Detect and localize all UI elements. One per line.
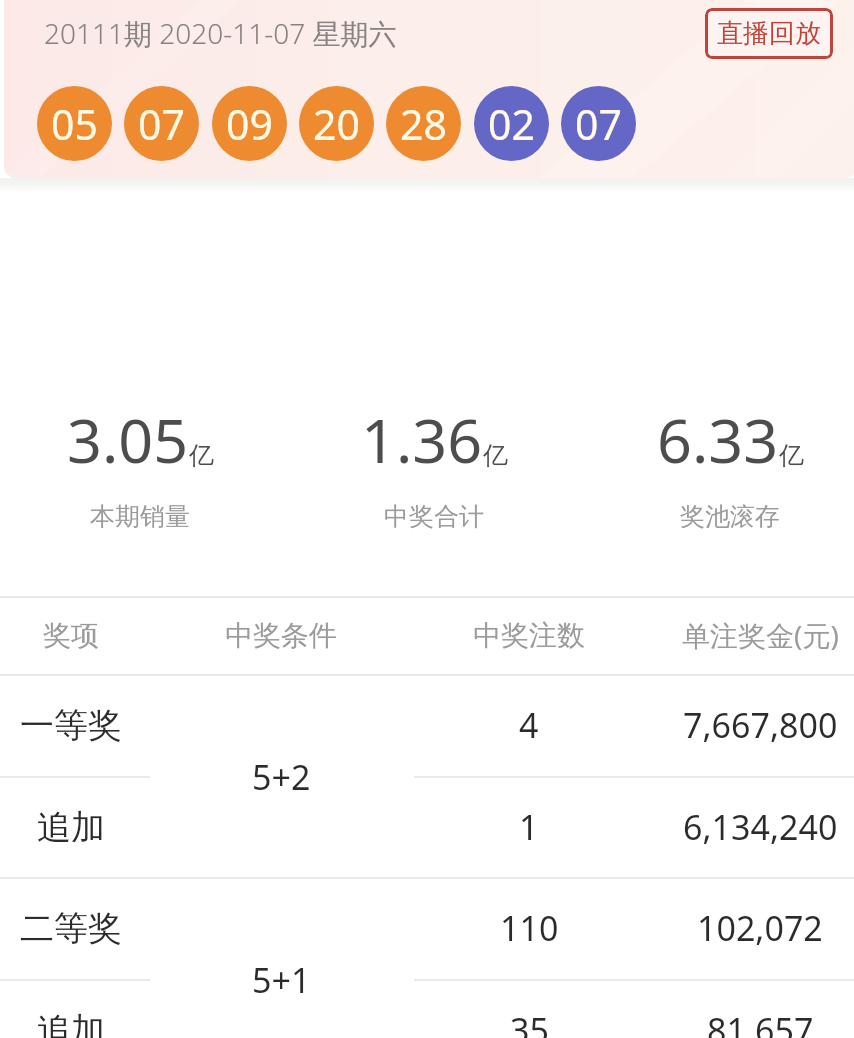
staticText: 亿 — [189, 440, 214, 471]
staticText: 07 — [138, 96, 185, 152]
button[interactable]: 二等奖 — [0, 877, 854, 979]
staticText: 亿 — [779, 440, 804, 471]
staticText: 09 — [226, 96, 273, 152]
staticText: 6,134,240 — [683, 804, 838, 850]
staticText: 1.36 — [361, 398, 483, 481]
staticText: 直播回放 — [717, 17, 821, 50]
button[interactable]: 号码 07 — [561, 86, 636, 161]
staticText: 20 — [313, 96, 360, 152]
staticText: 奖项 — [43, 618, 99, 653]
staticText: 追加 — [37, 1009, 105, 1038]
button[interactable]: 号码 05 — [37, 86, 112, 161]
staticText: 02 — [488, 96, 535, 152]
staticText: 奖池滚存 — [680, 501, 780, 532]
staticText: 二等奖 — [20, 907, 122, 950]
button[interactable]: 号码 07 — [124, 86, 199, 161]
button[interactable]: 追加 — [0, 979, 854, 1038]
staticText: 4 — [519, 702, 539, 748]
button[interactable]: 追加 — [0, 776, 854, 878]
button[interactable]: 号码 09 — [212, 86, 287, 161]
staticText: 35 — [510, 1007, 549, 1038]
staticText: 7,667,800 — [683, 702, 838, 748]
button[interactable]: 号码 28 — [386, 86, 461, 161]
button[interactable]: 号码 20 — [299, 86, 374, 161]
staticText: 07 — [575, 96, 622, 152]
staticText: 中奖条件 — [225, 618, 337, 653]
staticText: 6.33 — [657, 398, 779, 481]
staticText: 81,657 — [707, 1007, 814, 1038]
staticText: 一等奖 — [20, 704, 122, 747]
staticText: 本期销量 — [90, 501, 190, 532]
staticText: 中奖合计 — [384, 501, 484, 532]
staticText: 中奖注数 — [473, 618, 585, 653]
button[interactable]: 号码 02 — [474, 86, 549, 161]
staticText: 05 — [51, 96, 98, 152]
button[interactable]: 一等奖 — [0, 674, 854, 776]
staticText: 5+1 — [252, 957, 311, 1001]
staticText: 追加 — [37, 806, 105, 849]
staticText: 3.05 — [67, 398, 189, 481]
staticText: 20111期 2020-11-07 星期六 — [44, 14, 397, 52]
staticText: 28 — [400, 96, 447, 152]
button[interactable]: 直播回放 — [705, 8, 833, 59]
staticText: 单注奖金(元) — [682, 616, 839, 654]
staticText: 1 — [519, 804, 539, 850]
staticText: 5+2 — [252, 754, 311, 798]
staticText: 110 — [500, 905, 559, 951]
staticText: 102,072 — [697, 905, 823, 951]
staticText: 亿 — [483, 440, 508, 471]
